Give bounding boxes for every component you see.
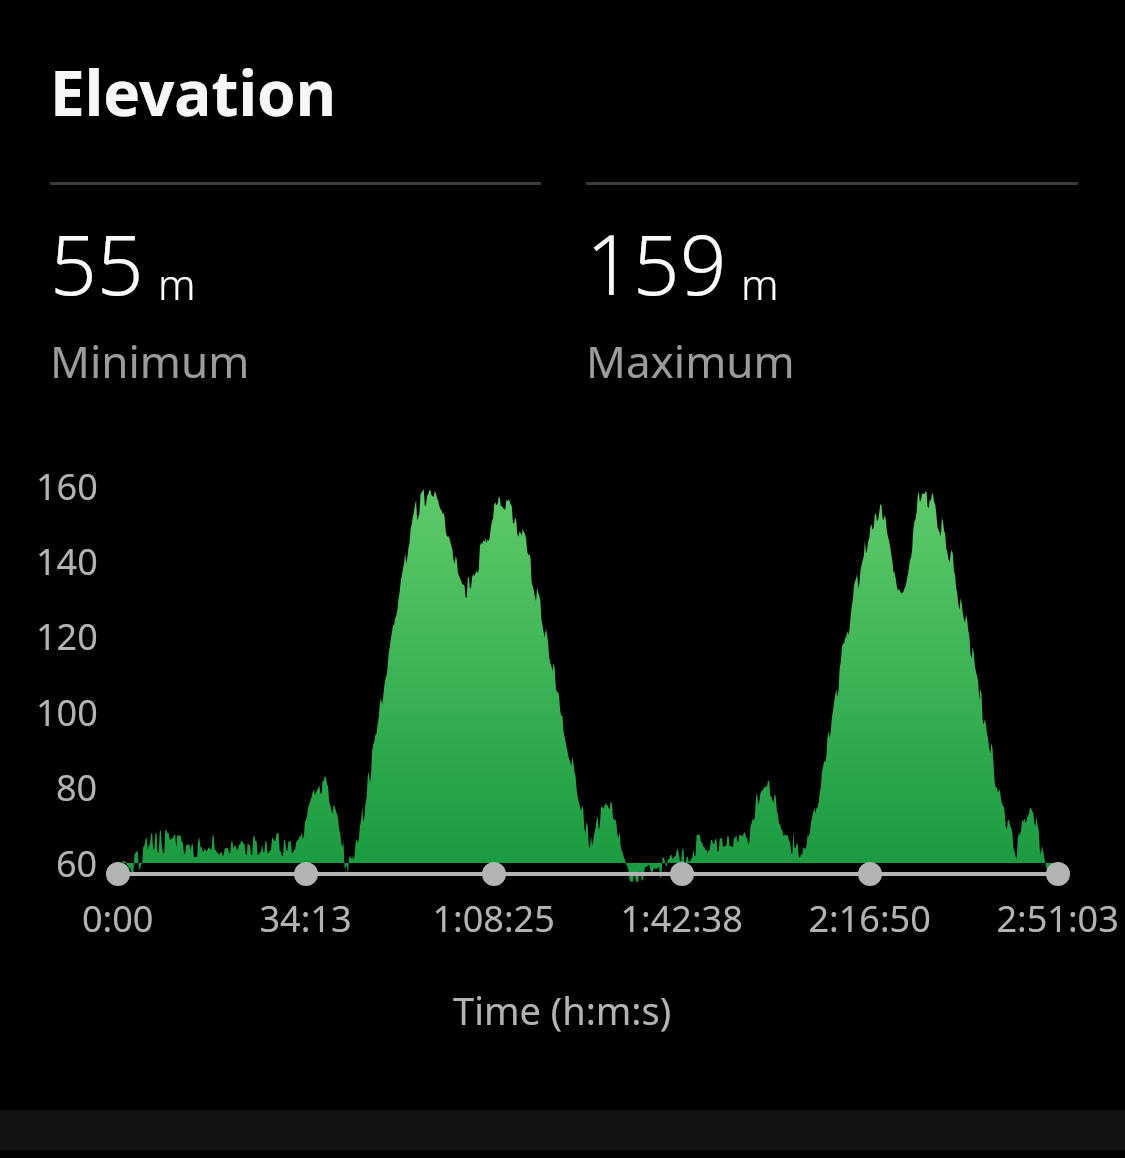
staticText: Elevation: [50, 50, 337, 134]
button[interactable]: 159: [586, 182, 1078, 391]
staticText: m: [741, 255, 779, 312]
staticText: m: [158, 255, 196, 312]
button[interactable]: 55: [50, 182, 541, 391]
staticText: Minimum: [50, 331, 250, 391]
other: Elevation profile chart over time: [0, 441, 1125, 1011]
staticText: 55: [50, 207, 144, 319]
staticText: 159: [586, 207, 727, 319]
staticText: Maximum: [586, 331, 795, 391]
